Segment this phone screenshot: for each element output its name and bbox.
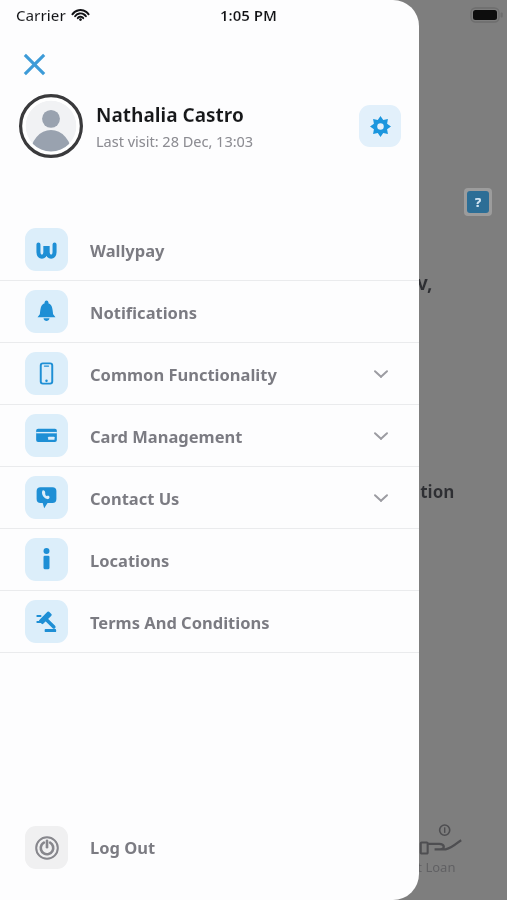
- staticText: et Loan: [410, 858, 456, 876]
- button[interactable]: Wallypay: [0, 219, 419, 280]
- staticText: 1:05 PM: [220, 5, 277, 25]
- button[interactable]: Close: [12, 42, 56, 86]
- staticText: Common Functionality: [90, 363, 277, 385]
- staticText: Carrier: [16, 5, 66, 25]
- button[interactable]: Terms And Conditions: [0, 591, 419, 652]
- button[interactable]: Card Management: [0, 405, 419, 466]
- staticText: Wallypay: [90, 239, 165, 261]
- button[interactable]: Nathalia Castro: [0, 90, 419, 162]
- button[interactable]: Common Functionality: [0, 343, 419, 404]
- button[interactable]: Contact Us: [0, 467, 419, 528]
- staticText: Log Out: [90, 836, 156, 858]
- staticText: Last visit: 28 Dec, 13:03: [96, 131, 254, 151]
- staticText: Notifications: [90, 301, 197, 323]
- staticText: Nathalia Castro: [96, 102, 244, 128]
- staticText: Contact Us: [90, 487, 180, 509]
- button[interactable]: Locations: [0, 529, 419, 590]
- staticText: Terms And Conditions: [90, 611, 270, 633]
- staticText: Card Management: [90, 425, 243, 447]
- button[interactable]: Settings: [359, 105, 401, 147]
- staticText: Locations: [90, 549, 170, 571]
- button[interactable]: Notifications: [0, 281, 419, 342]
- staticText: v,: [417, 270, 433, 296]
- button[interactable]: Log Out: [0, 816, 419, 878]
- staticText: ?: [475, 193, 482, 211]
- staticText: ation: [410, 480, 455, 503]
